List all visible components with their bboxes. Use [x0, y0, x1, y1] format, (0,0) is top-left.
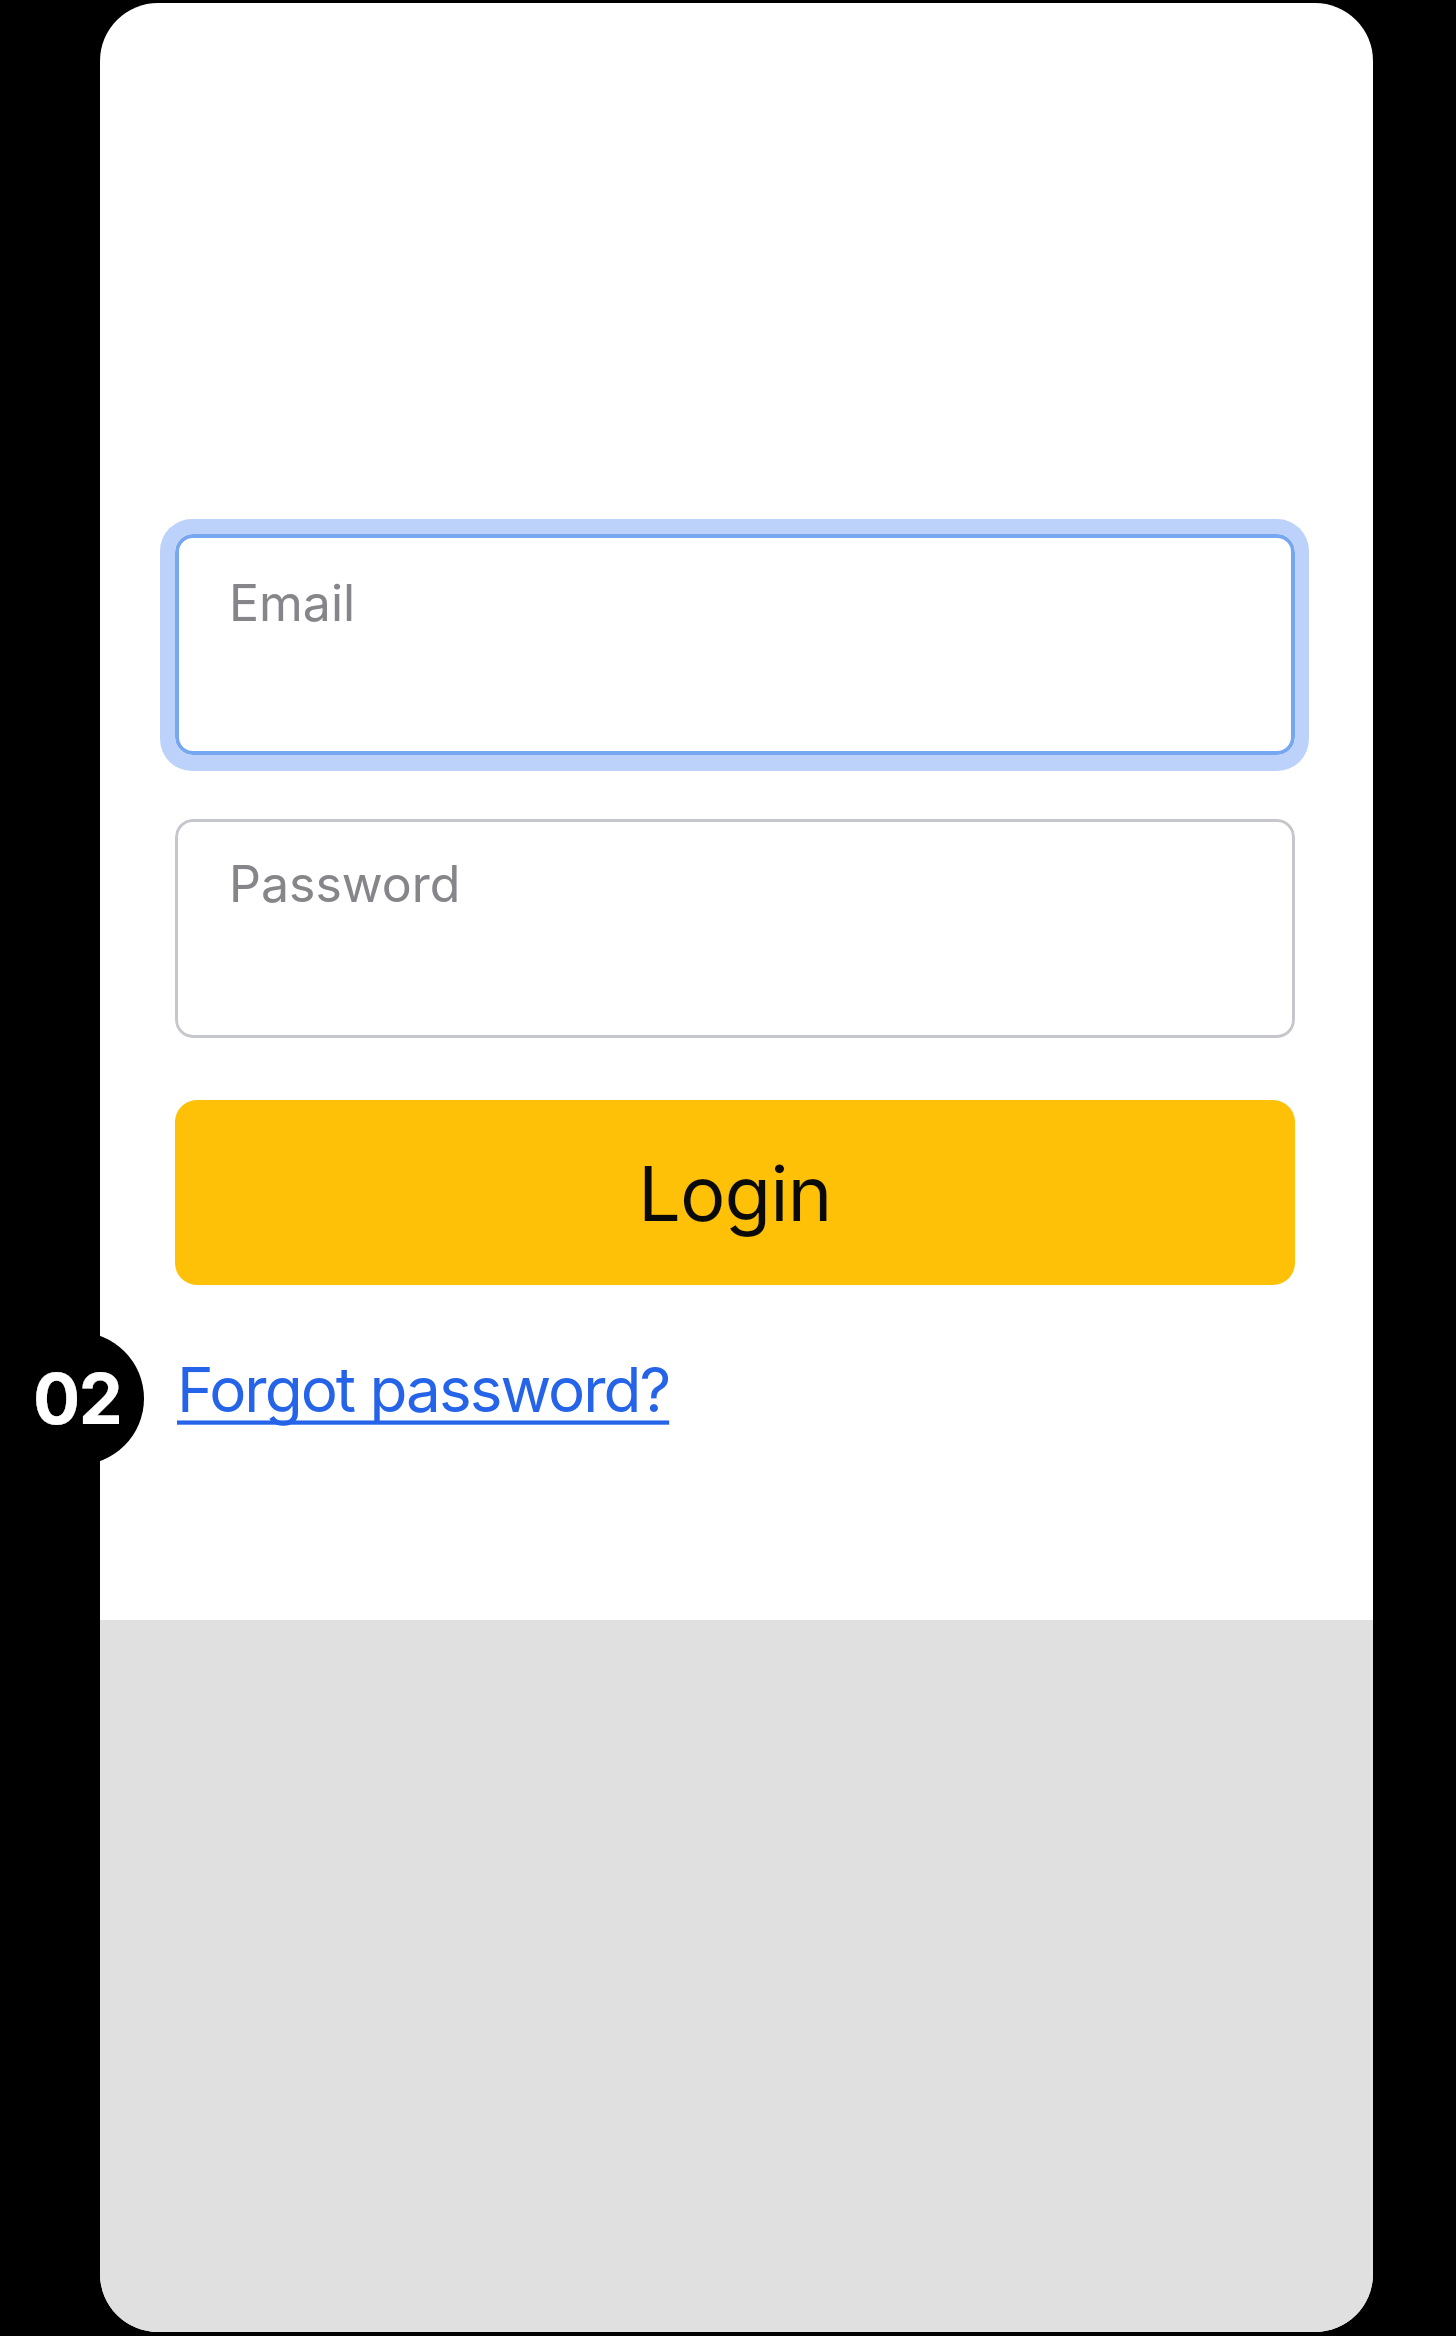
staticText: Password [229, 854, 461, 914]
button[interactable]: Login [175, 1100, 1295, 1285]
button[interactable]: Email [175, 534, 1295, 755]
staticText: Forgot password? [177, 1352, 670, 1427]
staticText: Login [638, 1147, 832, 1239]
staticText: Email [229, 573, 356, 633]
staticText: 02 [33, 1356, 122, 1441]
button[interactable]: Password [175, 819, 1295, 1038]
button[interactable]: Forgot password? [177, 1352, 670, 1427]
